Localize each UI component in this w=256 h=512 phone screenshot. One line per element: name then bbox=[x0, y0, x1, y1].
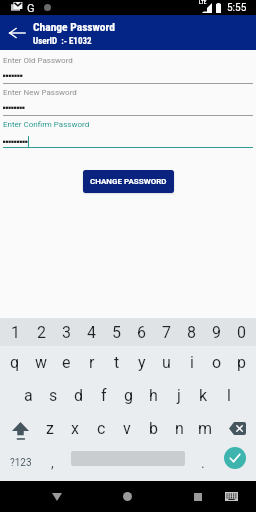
staticText: a bbox=[24, 386, 33, 405]
button[interactable]: j bbox=[166, 379, 191, 412]
staticText: 9 bbox=[212, 323, 221, 342]
staticText: u bbox=[162, 353, 171, 372]
staticText: t bbox=[114, 353, 120, 372]
staticText: CHANGE PASSWORD bbox=[90, 177, 167, 186]
button[interactable]: 8 bbox=[179, 318, 204, 346]
button[interactable]: r bbox=[79, 346, 104, 379]
button[interactable]: a bbox=[16, 379, 41, 412]
staticText: w bbox=[35, 353, 48, 372]
button[interactable]: k bbox=[191, 379, 216, 412]
staticText: d bbox=[74, 386, 84, 405]
staticText: y bbox=[138, 353, 146, 372]
staticText: 7 bbox=[162, 323, 171, 342]
button[interactable]: , bbox=[39, 445, 65, 481]
button[interactable]: l bbox=[216, 379, 241, 412]
button[interactable]: CHANGE PASSWORD bbox=[83, 170, 174, 193]
staticText: Enter Confirm Password bbox=[3, 120, 90, 129]
staticText: ?123 bbox=[10, 457, 32, 469]
staticText: 3 bbox=[62, 323, 71, 342]
staticText: i bbox=[190, 353, 194, 372]
staticText: 2 bbox=[37, 323, 46, 342]
button[interactable]: i bbox=[179, 346, 204, 379]
staticText: Enter New Password bbox=[3, 88, 77, 97]
button[interactable]: q bbox=[2, 346, 28, 379]
button[interactable]: z bbox=[37, 412, 62, 445]
staticText: f bbox=[101, 386, 107, 405]
button[interactable]: Enter Old Password bbox=[3, 52, 253, 84]
button[interactable]: 0 bbox=[229, 318, 254, 346]
button[interactable]: y bbox=[129, 346, 154, 379]
staticText: 1 bbox=[11, 323, 20, 342]
staticText: c bbox=[97, 419, 106, 438]
button[interactable]: 3 bbox=[54, 318, 79, 346]
button[interactable]: e bbox=[54, 346, 79, 379]
button[interactable]: b bbox=[140, 412, 166, 445]
button[interactable]: ?123 bbox=[0, 445, 42, 481]
staticText: r bbox=[89, 353, 95, 372]
button[interactable]: t bbox=[104, 346, 129, 379]
button[interactable]: f bbox=[91, 379, 116, 412]
staticText: z bbox=[46, 419, 54, 438]
button[interactable]: Back bbox=[4, 20, 30, 46]
button[interactable]: v bbox=[114, 412, 140, 445]
staticText: q bbox=[10, 353, 20, 372]
staticText: j bbox=[177, 386, 181, 405]
staticText: . bbox=[201, 455, 205, 471]
button[interactable]: 5 bbox=[104, 318, 129, 346]
button[interactable]: . bbox=[190, 445, 216, 481]
staticText: p bbox=[237, 353, 246, 372]
button[interactable]: Enter New Password bbox=[3, 84, 253, 116]
button[interactable]: Home bbox=[112, 481, 143, 512]
staticText: m bbox=[198, 419, 213, 438]
button[interactable]: h bbox=[141, 379, 166, 412]
button[interactable]: g bbox=[116, 379, 141, 412]
button[interactable]: 9 bbox=[204, 318, 229, 346]
button[interactable]: Switch keyboard bbox=[216, 481, 247, 512]
staticText: 5 bbox=[112, 323, 121, 342]
button[interactable]: 6 bbox=[129, 318, 154, 346]
button[interactable]: n bbox=[166, 412, 192, 445]
staticText: 4 bbox=[87, 323, 96, 342]
staticText: 0 bbox=[237, 323, 246, 342]
button[interactable]: o bbox=[204, 346, 229, 379]
button[interactable]: x bbox=[62, 412, 88, 445]
button[interactable]: w bbox=[28, 346, 54, 379]
staticText: , bbox=[51, 455, 54, 471]
staticText: 5:55 bbox=[227, 2, 247, 14]
button[interactable]: m bbox=[192, 412, 218, 445]
button[interactable]: Enter Confirm Password bbox=[3, 116, 253, 148]
staticText: k bbox=[199, 386, 208, 405]
button[interactable]: c bbox=[88, 412, 114, 445]
staticText: v bbox=[123, 419, 131, 438]
button[interactable]: Backspace bbox=[218, 412, 256, 445]
button[interactable]: p bbox=[229, 346, 254, 379]
button[interactable]: Shift bbox=[0, 412, 37, 445]
button[interactable]: 7 bbox=[154, 318, 179, 346]
staticText: e bbox=[62, 353, 71, 372]
staticText: s bbox=[49, 386, 58, 405]
button[interactable]: Back bbox=[41, 481, 72, 512]
button[interactable]: 2 bbox=[28, 318, 54, 346]
staticText: 8 bbox=[187, 323, 196, 342]
staticText: UserID :- E1032 bbox=[33, 36, 92, 47]
staticText: o bbox=[212, 353, 222, 372]
staticText: g bbox=[124, 386, 133, 405]
staticText: Enter Old Password bbox=[3, 56, 73, 65]
staticText: G bbox=[27, 2, 35, 15]
staticText: n bbox=[175, 419, 184, 438]
staticText: b bbox=[149, 419, 158, 438]
staticText: h bbox=[149, 386, 158, 405]
button[interactable]: s bbox=[41, 379, 66, 412]
staticText: Change Password bbox=[33, 20, 115, 33]
button[interactable]: Recents bbox=[182, 481, 213, 512]
staticText: LTE bbox=[199, 0, 207, 5]
button[interactable]: d bbox=[66, 379, 91, 412]
staticText: 6 bbox=[137, 323, 146, 342]
staticText: x bbox=[71, 419, 79, 438]
button[interactable]: u bbox=[154, 346, 179, 379]
button[interactable]: 4 bbox=[79, 318, 104, 346]
staticText: l bbox=[227, 386, 231, 405]
button[interactable]: Enter bbox=[224, 447, 246, 469]
button[interactable]: 1 bbox=[2, 318, 28, 346]
